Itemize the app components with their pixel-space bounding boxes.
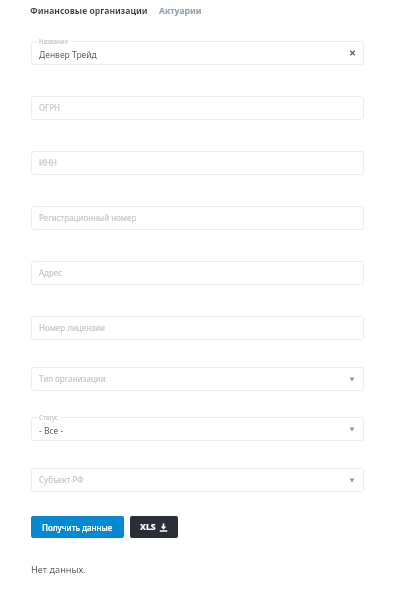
button[interactable]: Номер лицензии: [31, 316, 364, 340]
staticText: Тип организации: [39, 373, 106, 384]
other: Open dropdown: [347, 475, 357, 485]
button[interactable]: Адрес: [31, 261, 364, 285]
other: Clear: [348, 49, 357, 58]
staticText: Регистрационный номер: [39, 212, 137, 223]
staticText: Финансовые организации: [30, 5, 148, 17]
other: Download XLS: [159, 523, 168, 532]
staticText: Актуарии: [159, 5, 202, 17]
staticText: Нет данных.: [31, 563, 86, 576]
button[interactable]: ИНН: [31, 151, 364, 175]
staticText: - Все -: [39, 425, 64, 437]
staticText: ОГРН: [39, 102, 60, 113]
staticText: Номер лицензии: [39, 322, 105, 333]
button[interactable]: Получить данные: [31, 516, 124, 538]
staticText: Субъект РФ: [39, 474, 84, 485]
button[interactable]: XLS: [130, 516, 178, 538]
button[interactable]: Регистрационный номер: [31, 206, 364, 230]
staticText: Получить данные: [42, 522, 113, 533]
other: Open dropdown: [347, 424, 357, 434]
button[interactable]: Актуарии: [159, 5, 202, 17]
button[interactable]: Название: [31, 41, 364, 65]
staticText: ИНН: [39, 157, 57, 168]
staticText: Денвер Трейд: [39, 49, 97, 61]
staticText: Адрес: [39, 267, 63, 278]
staticText: Статус: [39, 413, 59, 421]
button[interactable]: Статус: [31, 417, 364, 441]
button[interactable]: Субъект РФ: [31, 468, 364, 492]
staticText: XLS: [140, 521, 156, 533]
staticText: Название: [39, 37, 69, 45]
button[interactable]: Тип организации: [31, 367, 364, 391]
other: Open dropdown: [347, 374, 357, 384]
button[interactable]: ОГРН: [31, 96, 364, 120]
button[interactable]: Финансовые организации: [30, 5, 148, 17]
